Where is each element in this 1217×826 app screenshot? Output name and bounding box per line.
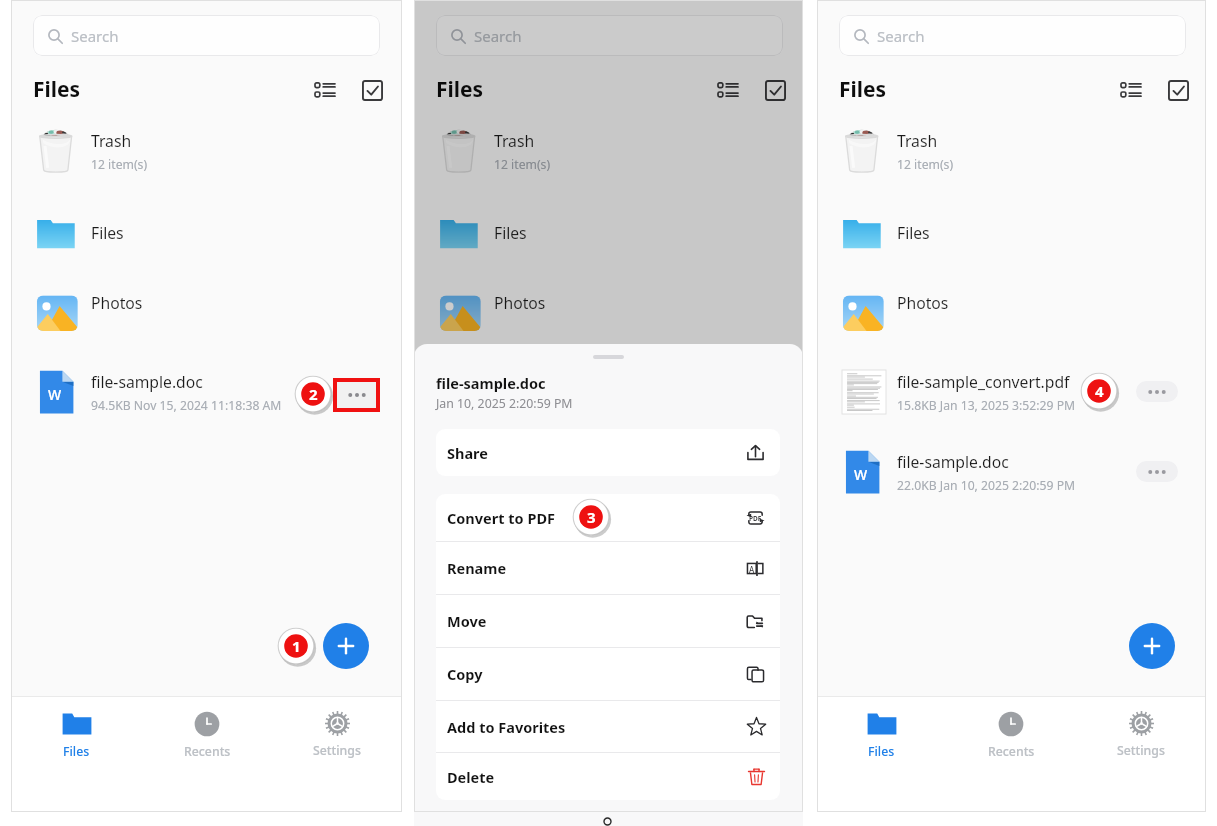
staticText: 2: [309, 384, 318, 404]
staticText: Rename: [447, 558, 507, 578]
staticText: PDF: [749, 514, 762, 523]
staticText: Jan 10, 2025 2:20:59 PM: [436, 395, 573, 412]
button[interactable]: Trash: [414, 111, 803, 191]
button[interactable]: List view: [1115, 74, 1147, 106]
staticText: Trash: [91, 130, 132, 151]
button[interactable]: Settings: [1076, 707, 1206, 763]
staticText: Recents: [184, 743, 231, 760]
staticText: file-sample.doc: [436, 373, 546, 393]
button[interactable]: More options: [1136, 381, 1178, 402]
staticText: Copy: [447, 664, 483, 684]
staticText: Files: [839, 75, 887, 104]
staticText: Search: [71, 26, 119, 46]
button[interactable]: Search: [33, 15, 380, 56]
button[interactable]: List view: [712, 74, 744, 106]
staticText: file-sample.doc: [91, 371, 203, 392]
button[interactable]: Select items: [356, 74, 388, 106]
staticText: Settings: [1117, 742, 1165, 759]
button[interactable]: Search: [839, 15, 1186, 56]
button[interactable]: Copy: [436, 648, 780, 700]
staticText: Files: [63, 743, 90, 760]
button[interactable]: Trash: [817, 111, 1206, 191]
staticText: Files: [897, 222, 930, 243]
button[interactable]: Delete: [436, 753, 780, 800]
staticText: Settings: [313, 742, 361, 759]
button[interactable]: Photos: [414, 262, 803, 342]
button[interactable]: More options: [1136, 461, 1178, 482]
staticText: Trash: [494, 130, 535, 151]
button[interactable]: Trash: [11, 111, 402, 191]
staticText: Delete: [447, 767, 495, 787]
staticText: Photos: [494, 292, 546, 313]
staticText: Move: [447, 611, 487, 631]
staticText: 1: [292, 636, 301, 656]
button[interactable]: Rename: [436, 542, 780, 594]
button[interactable]: Search: [436, 15, 783, 56]
staticText: Files: [494, 222, 527, 243]
button[interactable]: Files: [11, 192, 402, 272]
staticText: Photos: [897, 292, 949, 313]
staticText: 94.5KB Nov 15, 2024 11:18:38 AM: [91, 397, 282, 414]
button[interactable]: W: [11, 352, 402, 432]
button[interactable]: Files: [11, 707, 142, 764]
staticText: 15.8KB Jan 13, 2025 3:52:29 PM: [897, 397, 1076, 414]
staticText: A: [749, 564, 755, 575]
button[interactable]: Move: [436, 595, 780, 647]
staticText: W: [854, 465, 868, 484]
staticText: 12 item(s): [91, 156, 148, 173]
staticText: Photos: [91, 292, 143, 313]
staticText: 12 item(s): [494, 156, 551, 173]
staticText: 3: [587, 507, 596, 527]
staticText: Search: [474, 26, 522, 46]
button[interactable]: Select items: [759, 74, 791, 106]
staticText: Files: [868, 743, 895, 760]
staticText: file-sample_convert.pdf: [897, 371, 1070, 392]
staticText: file-sample.doc: [897, 451, 1009, 472]
button[interactable]: Files: [414, 192, 803, 272]
button[interactable]: Recents: [946, 707, 1076, 764]
button[interactable]: Settings: [272, 707, 402, 763]
staticText: W: [48, 385, 62, 404]
button[interactable]: Convert to PDF: [436, 494, 780, 541]
button[interactable]: Files: [817, 707, 946, 764]
button[interactable]: Photos: [817, 262, 1206, 342]
staticText: Files: [91, 222, 124, 243]
button[interactable]: Select items: [1162, 74, 1194, 106]
button[interactable]: More options: [333, 378, 380, 412]
button[interactable]: W: [817, 432, 1206, 512]
button[interactable]: file-sample_convert.pdf: [817, 352, 1206, 432]
staticText: Share: [447, 443, 488, 463]
staticText: Files: [33, 75, 81, 104]
staticText: Search: [877, 26, 925, 46]
staticText: 4: [1095, 381, 1104, 401]
button[interactable]: Dismiss menu: [414, 0, 803, 812]
button[interactable]: Add: [1129, 623, 1175, 669]
staticText: 22.0KB Jan 10, 2025 2:20:59 PM: [897, 477, 1076, 494]
button[interactable]: Recents: [142, 707, 272, 764]
button[interactable]: Share: [436, 429, 780, 476]
button[interactable]: Photos: [11, 262, 402, 342]
staticText: Trash: [897, 130, 938, 151]
staticText: Files: [436, 75, 484, 104]
staticText: 12 item(s): [897, 156, 954, 173]
button[interactable]: Add to Favorites: [436, 701, 780, 752]
button[interactable]: Files: [817, 192, 1206, 272]
button[interactable]: Add: [323, 623, 369, 669]
button[interactable]: List view: [309, 74, 341, 106]
staticText: Add to Favorites: [447, 717, 566, 737]
staticText: Recents: [988, 743, 1035, 760]
staticText: Convert to PDF: [447, 508, 555, 528]
